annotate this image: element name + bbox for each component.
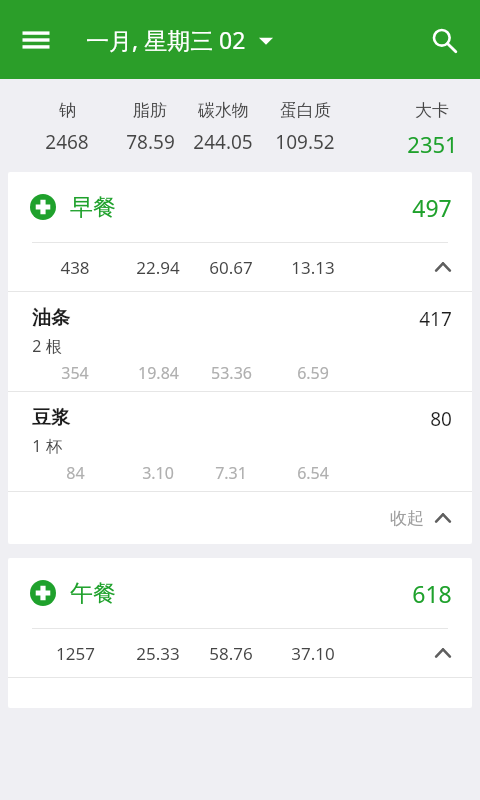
staticText: 438 bbox=[60, 256, 90, 279]
staticText: 58.76 bbox=[209, 642, 253, 665]
other: Collapse meal bbox=[428, 252, 458, 282]
staticText: 3.10 bbox=[142, 462, 174, 484]
staticText: 354 bbox=[61, 362, 89, 384]
staticText: 早餐 bbox=[70, 193, 116, 222]
staticText: 1 杯 bbox=[32, 435, 62, 457]
staticText: 7.31 bbox=[215, 462, 247, 484]
staticText: 2351 bbox=[407, 129, 458, 159]
staticText: 2468 bbox=[45, 129, 89, 155]
staticText: 618 bbox=[412, 578, 452, 609]
staticText: 午餐 bbox=[70, 579, 116, 608]
staticText: 19.84 bbox=[138, 362, 179, 384]
staticText: 大卡 bbox=[415, 100, 449, 121]
staticText: 84 bbox=[66, 462, 85, 484]
staticText: 脂肪 bbox=[133, 100, 167, 121]
staticText: 25.33 bbox=[136, 642, 180, 665]
staticText: 22.94 bbox=[136, 256, 180, 279]
staticText: 油条 bbox=[32, 306, 70, 330]
staticText: 60.67 bbox=[209, 256, 253, 279]
button[interactable]: 438 bbox=[8, 243, 472, 291]
staticText: 一月, 星期三 02 bbox=[86, 24, 246, 55]
staticText: 417 bbox=[419, 306, 452, 332]
staticText: 豆浆 bbox=[32, 406, 70, 430]
staticText: 6.54 bbox=[297, 462, 329, 484]
button[interactable]: Menu bbox=[10, 14, 62, 66]
staticText: 钠 bbox=[59, 100, 76, 121]
other: Collapse meal bbox=[428, 638, 458, 668]
button[interactable]: 一月, 星期三 02 bbox=[86, 24, 274, 55]
staticText: 80 bbox=[430, 406, 452, 432]
button[interactable]: 油条 bbox=[8, 292, 472, 392]
staticText: 蛋白质 bbox=[280, 100, 331, 121]
staticText: 13.13 bbox=[291, 256, 335, 279]
staticText: 497 bbox=[412, 192, 452, 223]
button[interactable]: 1257 bbox=[8, 629, 472, 677]
staticText: 1257 bbox=[56, 642, 95, 665]
staticText: 碳水物 bbox=[198, 100, 249, 121]
staticText: 2 根 bbox=[32, 335, 62, 357]
button[interactable]: Search bbox=[418, 14, 470, 66]
button[interactable]: 收起 bbox=[8, 492, 472, 544]
staticText: 6.59 bbox=[297, 362, 329, 384]
staticText: 109.52 bbox=[275, 129, 335, 155]
staticText: 78.59 bbox=[126, 129, 175, 155]
button[interactable]: 午餐 bbox=[8, 558, 472, 628]
staticText: 37.10 bbox=[291, 642, 335, 665]
staticText: 244.05 bbox=[193, 129, 253, 155]
button[interactable]: 豆浆 bbox=[8, 392, 472, 492]
staticText: 收起 bbox=[390, 508, 424, 529]
button[interactable]: 早餐 bbox=[8, 172, 472, 242]
staticText: 53.36 bbox=[211, 362, 252, 384]
